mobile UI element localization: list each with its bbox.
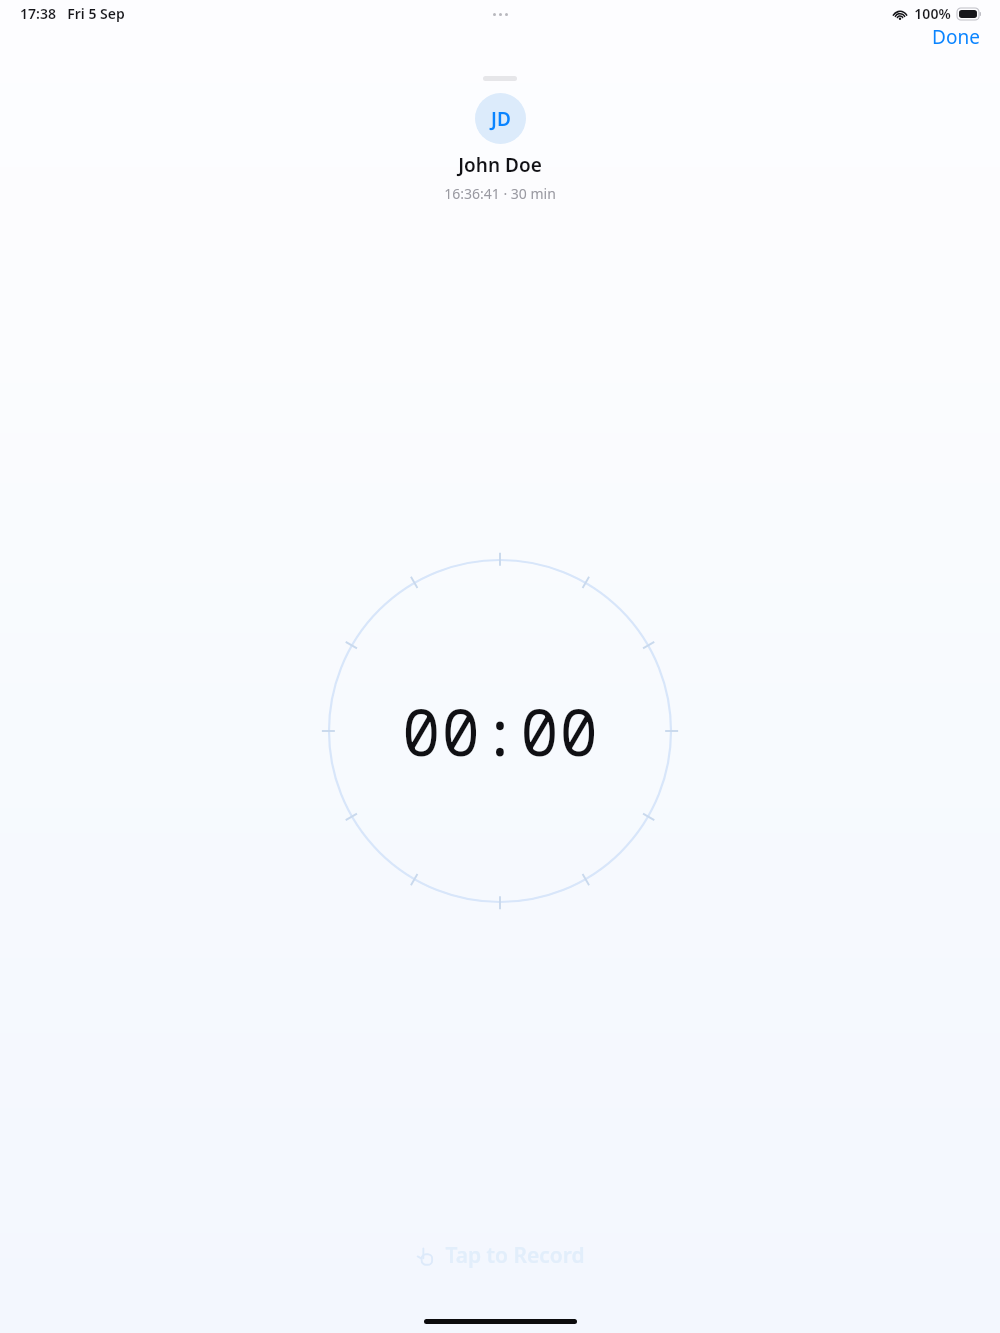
staticText: JD [491, 106, 511, 132]
button[interactable]: JD [475, 93, 526, 144]
staticText: 17:38 [20, 4, 56, 23]
staticText: Tap to Record [445, 1241, 585, 1270]
staticText: Fri 5 Sep [67, 4, 125, 23]
staticText: Done [932, 24, 980, 50]
staticText: 00:00 [402, 688, 599, 775]
button[interactable]: Tap to record [403, 1235, 597, 1276]
button[interactable]: 00:00 [327, 558, 673, 904]
button[interactable]: Done [912, 16, 1000, 58]
staticText: 100% [914, 4, 951, 23]
staticText: John Doe [458, 152, 542, 178]
other: Tap to record [415, 1245, 437, 1267]
staticText: 16:36:41 · 30 min [444, 184, 556, 203]
